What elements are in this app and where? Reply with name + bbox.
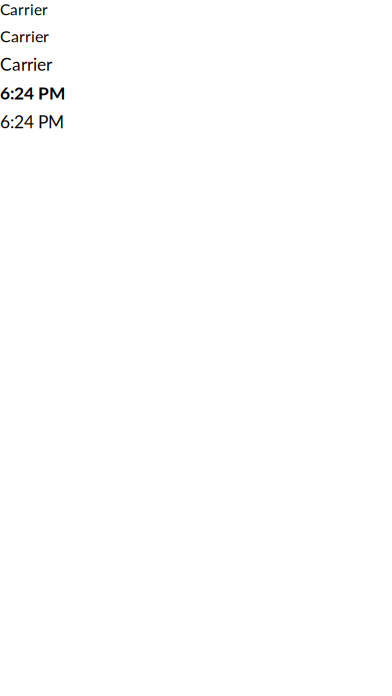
staticText: Carrier <box>0 54 52 74</box>
staticText: 6:24 PM <box>0 111 64 132</box>
staticText: Carrier <box>0 26 49 46</box>
staticText: Carrier <box>0 0 48 18</box>
staticText: 6:24 PM <box>0 82 65 103</box>
